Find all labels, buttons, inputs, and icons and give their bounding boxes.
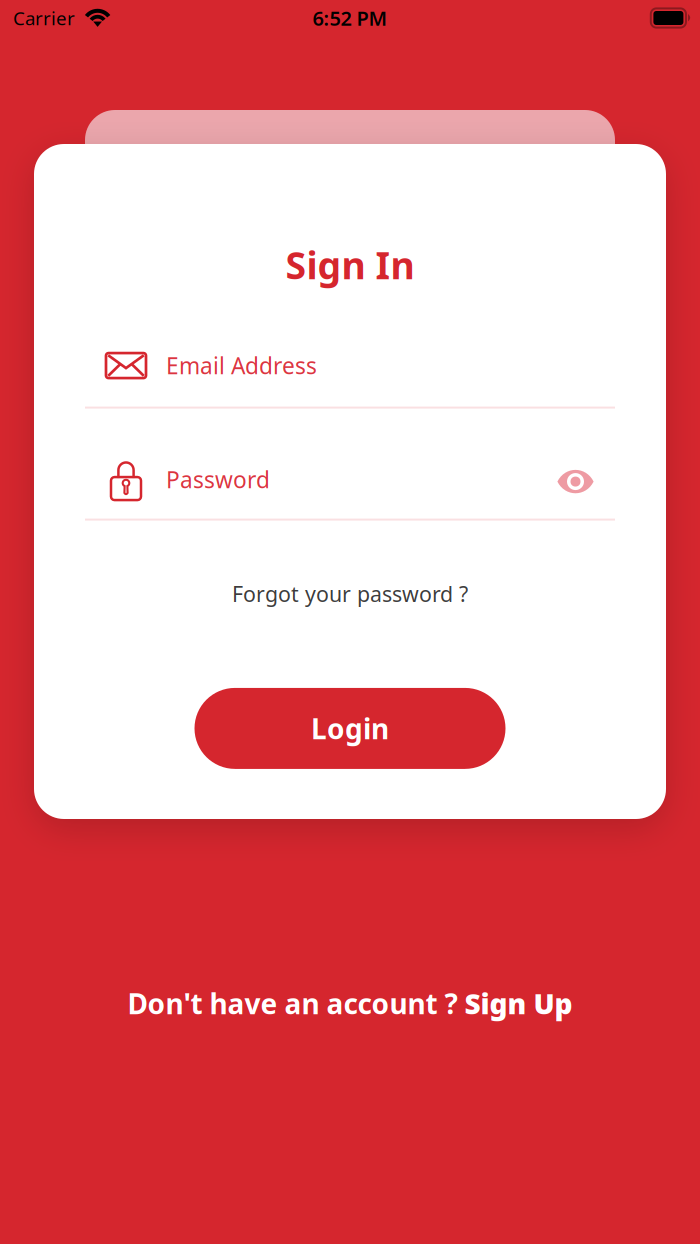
staticText: Email Address [166, 350, 317, 381]
button[interactable]: Forgot your password ? [218, 574, 482, 614]
staticText: Password [166, 464, 270, 495]
button[interactable]: Show password [557, 457, 615, 503]
button[interactable]: Login [194, 688, 505, 769]
staticText: 6:52 PM [312, 5, 387, 31]
staticText: Login [311, 710, 389, 747]
staticText: Don't have an account ? [127, 985, 464, 1022]
staticText: Sign Up [464, 985, 572, 1022]
staticText: Sign In [285, 240, 414, 290]
staticText: Carrier [13, 6, 75, 30]
staticText: Forgot your password ? [232, 580, 468, 608]
button[interactable]: Don't have an account ? [0, 975, 700, 1032]
